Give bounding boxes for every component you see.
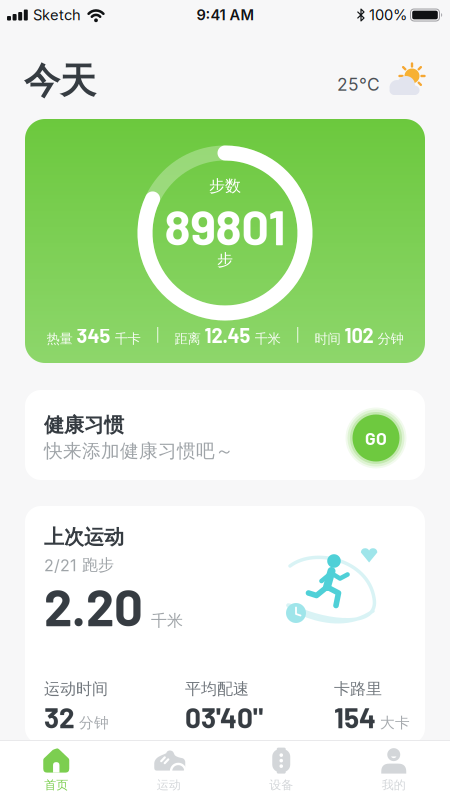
staticText: 设备 <box>269 778 293 792</box>
staticText: 运动 <box>157 778 181 792</box>
staticText: 25°C <box>337 74 380 95</box>
staticText: 步数 <box>209 176 241 196</box>
staticText: 100% <box>369 6 407 24</box>
staticText: 我的 <box>382 778 406 792</box>
button[interactable]: 首页 <box>0 740 112 800</box>
staticText: 102 <box>344 323 373 347</box>
staticText: 千米 <box>254 331 280 347</box>
staticText: | <box>155 327 159 343</box>
staticText: 大卡 <box>380 714 410 732</box>
staticText: 2.20 <box>44 576 143 636</box>
staticText: 卡路里 <box>334 679 382 699</box>
staticText: 2/21 跑步 <box>44 555 114 575</box>
button[interactable]: 我的 <box>337 740 450 800</box>
staticText: 千卡 <box>114 331 140 347</box>
button[interactable]: 设备 <box>225 740 337 800</box>
staticText: 上次运动 <box>44 525 124 549</box>
staticText: 运动时间 <box>44 679 108 699</box>
staticText: GO <box>365 428 387 448</box>
staticText: 千米 <box>151 611 183 630</box>
staticText: 健康习惯 <box>44 413 124 437</box>
staticText: Sketch <box>33 6 81 24</box>
button[interactable]: 上次运动 <box>25 506 425 744</box>
button[interactable]: GO <box>345 407 407 469</box>
staticText: 345 <box>76 323 110 347</box>
staticText: 89801 <box>164 197 285 255</box>
staticText: 154 <box>334 700 376 734</box>
staticText: 热量 <box>46 331 72 347</box>
staticText: 9:41 AM <box>196 6 254 24</box>
staticText: 步 <box>217 250 233 270</box>
staticText: 12.45 <box>204 323 250 347</box>
staticText: 32 <box>44 700 75 734</box>
button[interactable]: 步数 <box>25 119 425 363</box>
staticText: 快来添加健康习惯吧～ <box>44 439 234 462</box>
button[interactable]: 运动 <box>112 740 225 800</box>
staticText: 今天 <box>24 59 96 103</box>
button[interactable]: 健康习惯 <box>25 390 425 480</box>
staticText: 分钟 <box>79 714 109 732</box>
staticText: 时间 <box>314 331 340 347</box>
staticText: | <box>295 327 299 343</box>
staticText: 首页 <box>44 778 68 792</box>
staticText: 平均配速 <box>185 679 249 699</box>
staticText: 分钟 <box>377 331 403 347</box>
staticText: 距离 <box>174 331 200 347</box>
staticText: 03'40" <box>185 700 263 734</box>
